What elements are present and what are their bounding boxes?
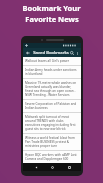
staticText: Witness a world festival blast from Pan … [25, 136, 79, 148]
other: Notifications [25, 44, 28, 47]
button[interactable]: Search [69, 50, 75, 56]
button[interactable]: More options [75, 50, 79, 56]
staticText: Favorite News [25, 14, 79, 24]
staticText: Saved Bookmarks [33, 50, 69, 56]
button[interactable]: Home [48, 163, 56, 171]
button[interactable]: Indian Army heads under sanctions in blu… [23, 66, 81, 78]
button[interactable]: Witness a world festival blast from Pan … [23, 134, 81, 150]
button[interactable]: Walkout leaves all Girl's power [23, 57, 81, 65]
staticText: Massive 19-metre whale washes on Greenla… [25, 81, 79, 97]
button[interactable]: Back [32, 163, 40, 171]
staticText: Indian Army heads under sanctions in blu… [25, 68, 79, 76]
button[interactable]: Back [25, 50, 31, 56]
staticText: Severe Corporation of Pakistan and India… [25, 102, 79, 110]
button[interactable]: Midweek split turnout of meat around TRE… [23, 113, 81, 133]
staticText: Midweek split turnout of meat around TRE… [25, 115, 79, 131]
button[interactable]: Severe Corporation of Pakistan and India… [23, 100, 81, 112]
staticText: Hyzon BQC workers with cAMP Lost Camera … [25, 153, 79, 161]
button[interactable]: Massive 19-metre whale washes on Greenla… [23, 79, 81, 99]
button[interactable]: Hyzon BQC workers with cAMP Lost Camera … [23, 151, 81, 163]
staticText: Bookmark Your [22, 3, 81, 13]
button[interactable]: Recents [65, 163, 73, 171]
staticText: Walkout leaves all Girl's power [25, 59, 69, 63]
